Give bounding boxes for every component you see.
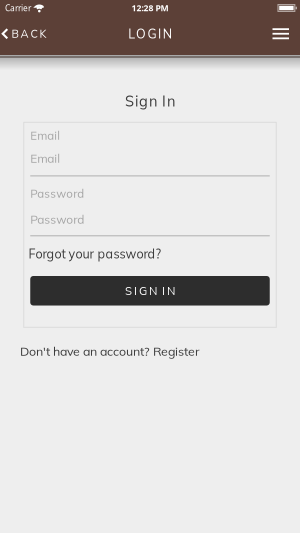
staticText: S I G N I N — [125, 284, 175, 298]
staticText: S i g n I n — [125, 92, 175, 110]
staticText: 12:28 PM — [131, 2, 168, 14]
button[interactable]: Sign In — [30, 276, 270, 305]
staticText: B A C K — [11, 27, 46, 41]
staticText: Forgot your password? — [29, 246, 162, 262]
staticText: Password — [30, 212, 84, 227]
staticText: Email — [30, 128, 60, 142]
button[interactable]: Register — [153, 343, 200, 359]
staticText: LOGIN — [128, 26, 172, 42]
button[interactable]: Back — [0, 19, 46, 49]
button[interactable]: Password — [30, 200, 270, 236]
staticText: Password — [30, 186, 84, 200]
button[interactable]: Email — [30, 142, 270, 176]
staticText: Carrier — [5, 2, 31, 14]
staticText: Don't have an account? — [20, 343, 153, 359]
button[interactable]: Menu — [272, 20, 300, 47]
staticText: Register — [153, 343, 200, 359]
button[interactable]: Forgot your password? — [29, 247, 162, 261]
staticText: Email — [30, 151, 60, 166]
